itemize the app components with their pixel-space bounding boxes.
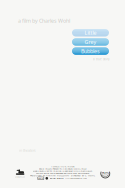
staticText: in theaters <box>19 148 36 153</box>
staticText: Bubbles <box>81 47 100 55</box>
staticText: SELECTION <box>101 174 110 176</box>
staticText: MUSIC ELIAS VANDERMEER EDITOR SAM KOWALC… <box>36 172 89 175</box>
staticText: PRODUCED BY HANNAH HOLLOWAY DIRECTED BY … <box>30 174 95 177</box>
staticText: DOLBY DIGITAL <box>50 177 64 180</box>
staticText: a film by Charles Wohl <box>18 17 70 24</box>
staticText: ARGO FILMS PRESENTS A CHARLES WOHL FILM <box>38 167 86 170</box>
button[interactable]: Little <box>72 29 109 36</box>
staticText: WOHL <box>102 171 109 174</box>
staticText: MARIA ELENA SOTO DANIEL HARGRAVE NINA OK… <box>32 169 92 172</box>
staticText: Little <box>84 29 96 36</box>
staticText: a true story <box>93 57 109 61</box>
staticText: A CHARLES WOHL PICTURE <box>50 165 74 168</box>
button[interactable]: Grey <box>72 38 109 46</box>
staticText: WOHLFILM <box>15 176 25 178</box>
staticText: PG-13 <box>38 177 43 180</box>
staticText: littlegreybubbles.com <box>65 177 87 180</box>
button[interactable]: Bubbles <box>72 47 109 55</box>
staticText: Grey <box>84 38 96 46</box>
